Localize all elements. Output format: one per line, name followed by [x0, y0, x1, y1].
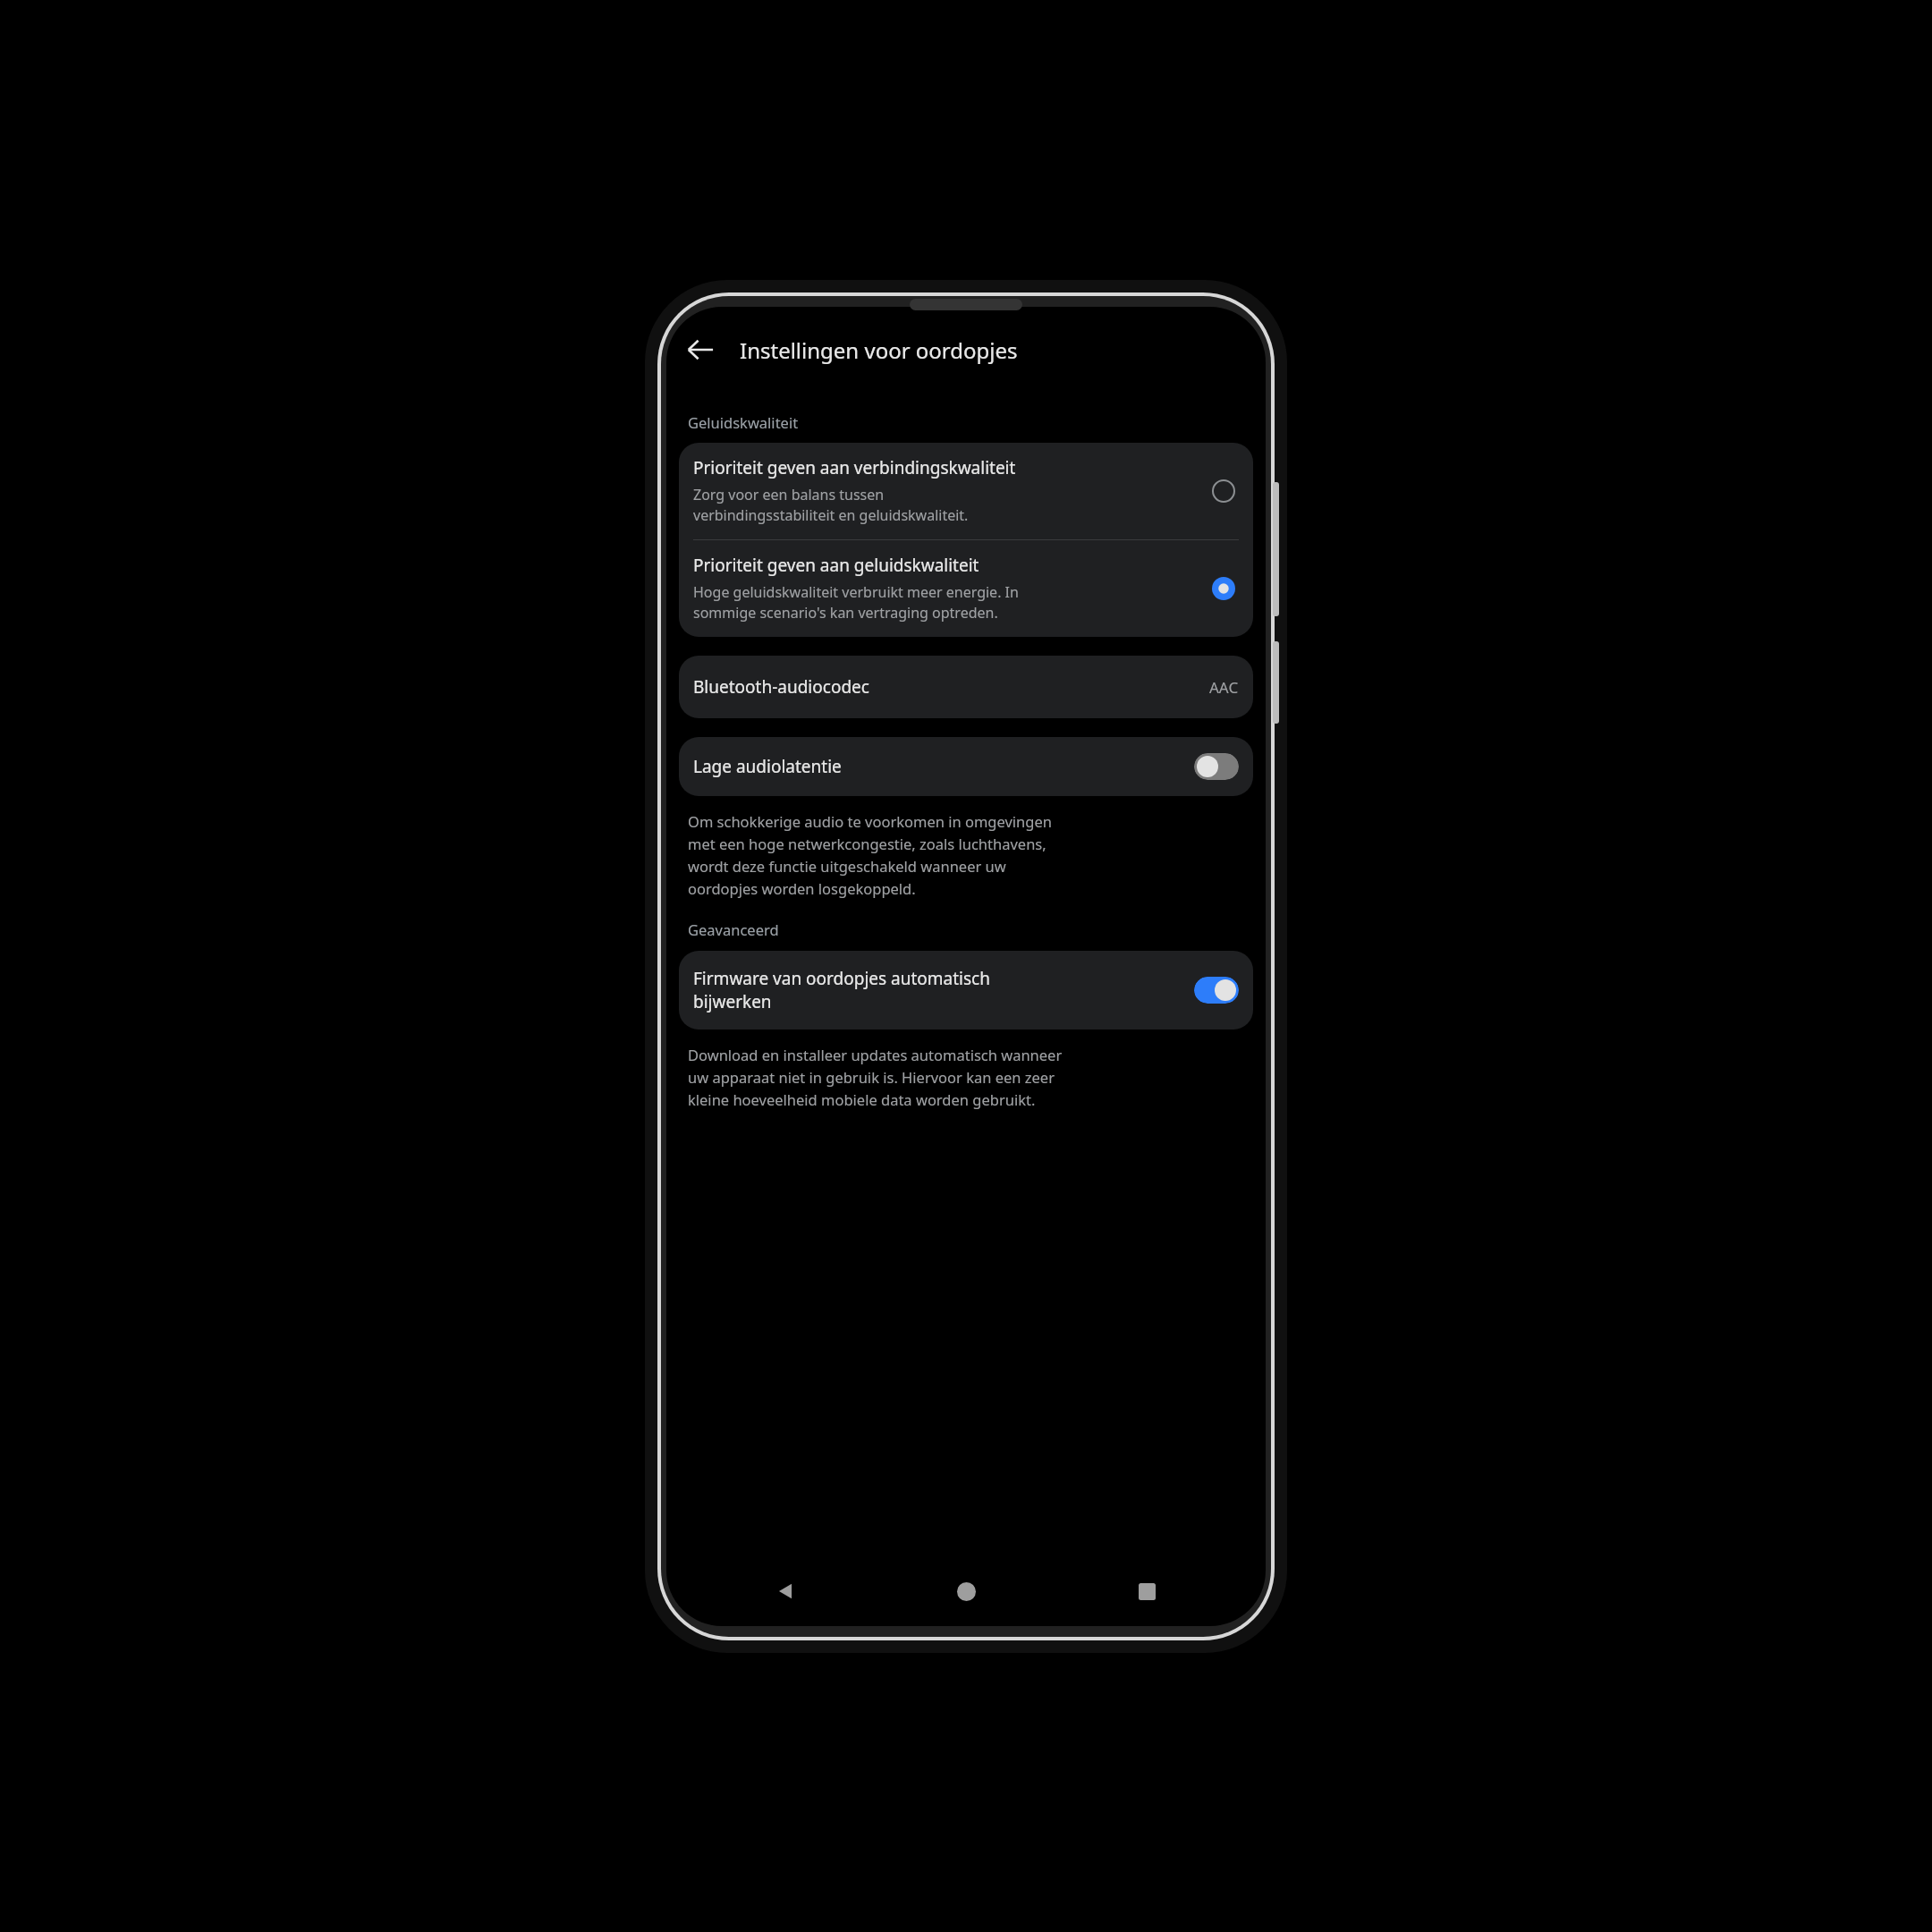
- staticText: AAC: [1209, 677, 1239, 698]
- staticText: Bluetooth-audiocodec: [693, 675, 1209, 699]
- staticText: Instellingen voor oordopjes: [740, 335, 1018, 365]
- button[interactable]: Aan: [1194, 977, 1239, 1004]
- staticText: Geluidskwaliteit: [688, 412, 799, 432]
- button[interactable]: Lage audiolatentie: [679, 737, 1253, 796]
- staticText: Lage audiolatentie: [693, 755, 1194, 778]
- button[interactable]: Prioriteit geven aan geluidskwaliteit: [679, 540, 1253, 637]
- button[interactable]: Firmware van oordopjes automatisch bijwe…: [679, 951, 1253, 1030]
- staticText: Prioriteit geven aan verbindingskwalitei…: [693, 456, 1016, 479]
- button[interactable]: Bluetooth-audiocodec: [679, 656, 1253, 718]
- button[interactable]: Uit: [1194, 753, 1239, 780]
- staticText: Firmware van oordopjes automatisch bijwe…: [693, 967, 1185, 1013]
- staticText: Geavanceerd: [688, 919, 779, 939]
- button[interactable]: Start: [941, 1566, 991, 1616]
- button[interactable]: Terug: [760, 1566, 810, 1616]
- staticText: Download en installeer updates automatis…: [688, 1045, 1063, 1109]
- staticText: Hoge geluidskwaliteit verbruikt meer ene…: [693, 582, 1019, 623]
- button[interactable]: Terug: [674, 323, 727, 377]
- button[interactable]: Recente apps: [1122, 1566, 1172, 1616]
- staticText: Zorg voor een balans tussen verbindingss…: [693, 485, 969, 525]
- staticText: Prioriteit geven aan geluidskwaliteit: [693, 554, 979, 577]
- staticText: Om schokkerige audio te voorkomen in omg…: [688, 811, 1052, 898]
- button[interactable]: Prioriteit geven aan verbindingskwalitei…: [679, 443, 1253, 539]
